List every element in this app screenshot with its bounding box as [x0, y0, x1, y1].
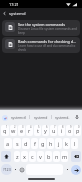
button[interactable]: Back [0, 9, 9, 18]
staticText: Discover Linux file system commands and … [18, 27, 77, 35]
button[interactable]: Bash commands for checking disk usage [2, 37, 80, 53]
button[interactable]: g [39, 138, 46, 149]
button[interactable]: systemd [30, 110, 51, 124]
button[interactable]: k [63, 138, 70, 149]
staticText: f [34, 140, 36, 147]
staticText: q [3, 127, 7, 134]
button[interactable]: Emoji [19, 164, 25, 175]
staticText: 7 [54, 125, 56, 129]
staticText: k [65, 140, 68, 147]
button[interactable]: Shift [1, 151, 11, 162]
button[interactable]: l [71, 138, 78, 149]
staticText: Bash commands for checking disk usage [18, 39, 77, 44]
button[interactable]: e [18, 125, 25, 136]
button[interactable]: f [31, 138, 38, 149]
staticText: w [11, 127, 16, 134]
button[interactable]: Period [64, 164, 70, 175]
staticText: See the system commands [18, 22, 66, 27]
staticText: 1 [6, 125, 8, 129]
button[interactable]: ?123 [1, 164, 12, 175]
staticText: t [37, 127, 39, 134]
button[interactable]: n [53, 151, 60, 162]
button[interactable]: w [10, 125, 17, 136]
staticText: i [61, 127, 63, 134]
staticText: systemd [9, 11, 26, 17]
button[interactable]: m [61, 151, 68, 162]
staticText: m [62, 153, 68, 160]
staticText: 6 [46, 125, 48, 129]
staticText: r [28, 127, 31, 134]
button[interactable]: p [74, 125, 81, 136]
button[interactable]: q [1, 125, 9, 136]
staticText: Learn how to use df and du command to ch… [18, 44, 77, 52]
staticText: z [16, 153, 19, 160]
button[interactable]: x [21, 151, 28, 162]
button[interactable]: Backspace [71, 151, 81, 162]
button[interactable]: s [13, 138, 21, 149]
staticText: 9 [70, 125, 72, 129]
button[interactable]: Voice input [73, 113, 81, 121]
button[interactable]: u [50, 125, 57, 136]
staticText: s [16, 140, 19, 147]
staticText: systemctl [11, 115, 27, 120]
staticText: systemd [34, 115, 48, 120]
staticText: systemd- [55, 115, 70, 120]
button[interactable]: t [34, 125, 41, 136]
button[interactable]: b [45, 151, 52, 162]
staticText: p [76, 127, 80, 134]
staticText: x [23, 153, 26, 160]
button[interactable]: h [47, 138, 54, 149]
button[interactable]: Comma [13, 164, 18, 175]
button[interactable]: o [66, 125, 73, 136]
staticText: y [44, 127, 47, 134]
staticText: 3 [22, 125, 24, 129]
staticText: a [6, 140, 10, 147]
button[interactable]: d [22, 138, 30, 149]
button[interactable]: c [29, 151, 36, 162]
button[interactable]: See the system commands [2, 20, 80, 36]
staticText: ?123 [3, 167, 11, 172]
button[interactable]: z [14, 151, 20, 162]
button[interactable]: Search [71, 165, 81, 175]
button[interactable]: y [42, 125, 49, 136]
staticText: 2 [14, 125, 16, 129]
button[interactable]: Google Assistant [1, 114, 8, 121]
button[interactable]: j [55, 138, 62, 149]
staticText: v [39, 153, 42, 160]
staticText: n [55, 153, 59, 160]
staticText: 4 [30, 125, 32, 129]
button[interactable]: systemctl [8, 110, 29, 124]
button[interactable]: v [37, 151, 44, 162]
button[interactable]: r [26, 125, 33, 136]
staticText: 5 [38, 125, 40, 129]
staticText: j [58, 140, 60, 147]
staticText: d [24, 140, 28, 147]
button[interactable]: systemd- [52, 110, 73, 124]
staticText: h [49, 140, 53, 147]
button[interactable]: a [4, 138, 12, 149]
staticText: g [41, 140, 45, 147]
staticText: u [52, 127, 56, 134]
staticText: c [31, 153, 34, 160]
staticText: b [47, 153, 51, 160]
button[interactable]: i [58, 125, 65, 136]
staticText: 17:21 [9, 2, 19, 7]
staticText: l [74, 140, 76, 147]
staticText: e [20, 127, 24, 134]
staticText: o [68, 127, 72, 134]
staticText: 8 [62, 125, 64, 129]
staticText: 0 [78, 125, 80, 129]
